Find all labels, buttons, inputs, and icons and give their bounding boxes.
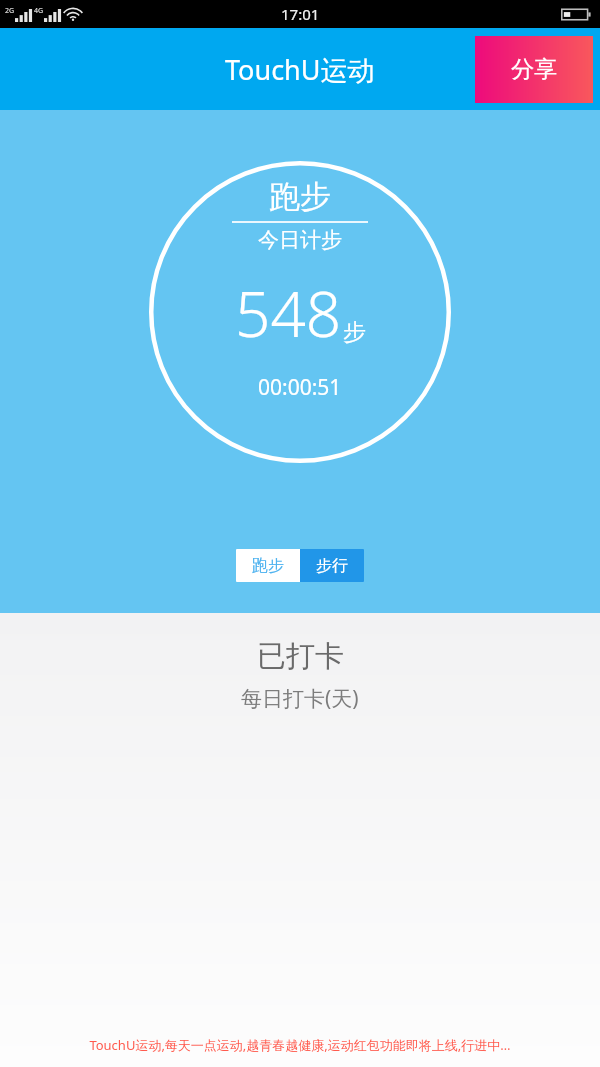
staticText: 已打卡 <box>257 638 344 675</box>
staticText: 17:01 <box>281 4 320 24</box>
staticText: 跑步 <box>269 177 331 216</box>
staticText: 00:00:51 <box>258 373 342 402</box>
staticText: 分享 <box>511 55 557 84</box>
staticText: 2G <box>5 6 15 16</box>
button[interactable]: 跑步 <box>236 549 300 582</box>
staticText: 步行 <box>316 556 348 576</box>
staticText: 步 <box>343 318 366 347</box>
staticText: TouchU运动 <box>225 51 375 88</box>
staticText: 今日计步 <box>258 227 342 253</box>
staticText: 548 <box>235 271 342 355</box>
button[interactable]: 步行 <box>300 549 364 582</box>
staticText: 跑步 <box>252 556 284 576</box>
button[interactable]: 分享 <box>475 36 593 103</box>
staticText: 4G <box>34 6 44 16</box>
staticText: 每日打卡(天) <box>241 684 359 713</box>
button[interactable]: 已打卡 <box>0 638 600 713</box>
staticText: TouchU运动,每天一点运动,越青春越健康,运动红包功能即将上线,行进中… <box>89 1036 511 1054</box>
